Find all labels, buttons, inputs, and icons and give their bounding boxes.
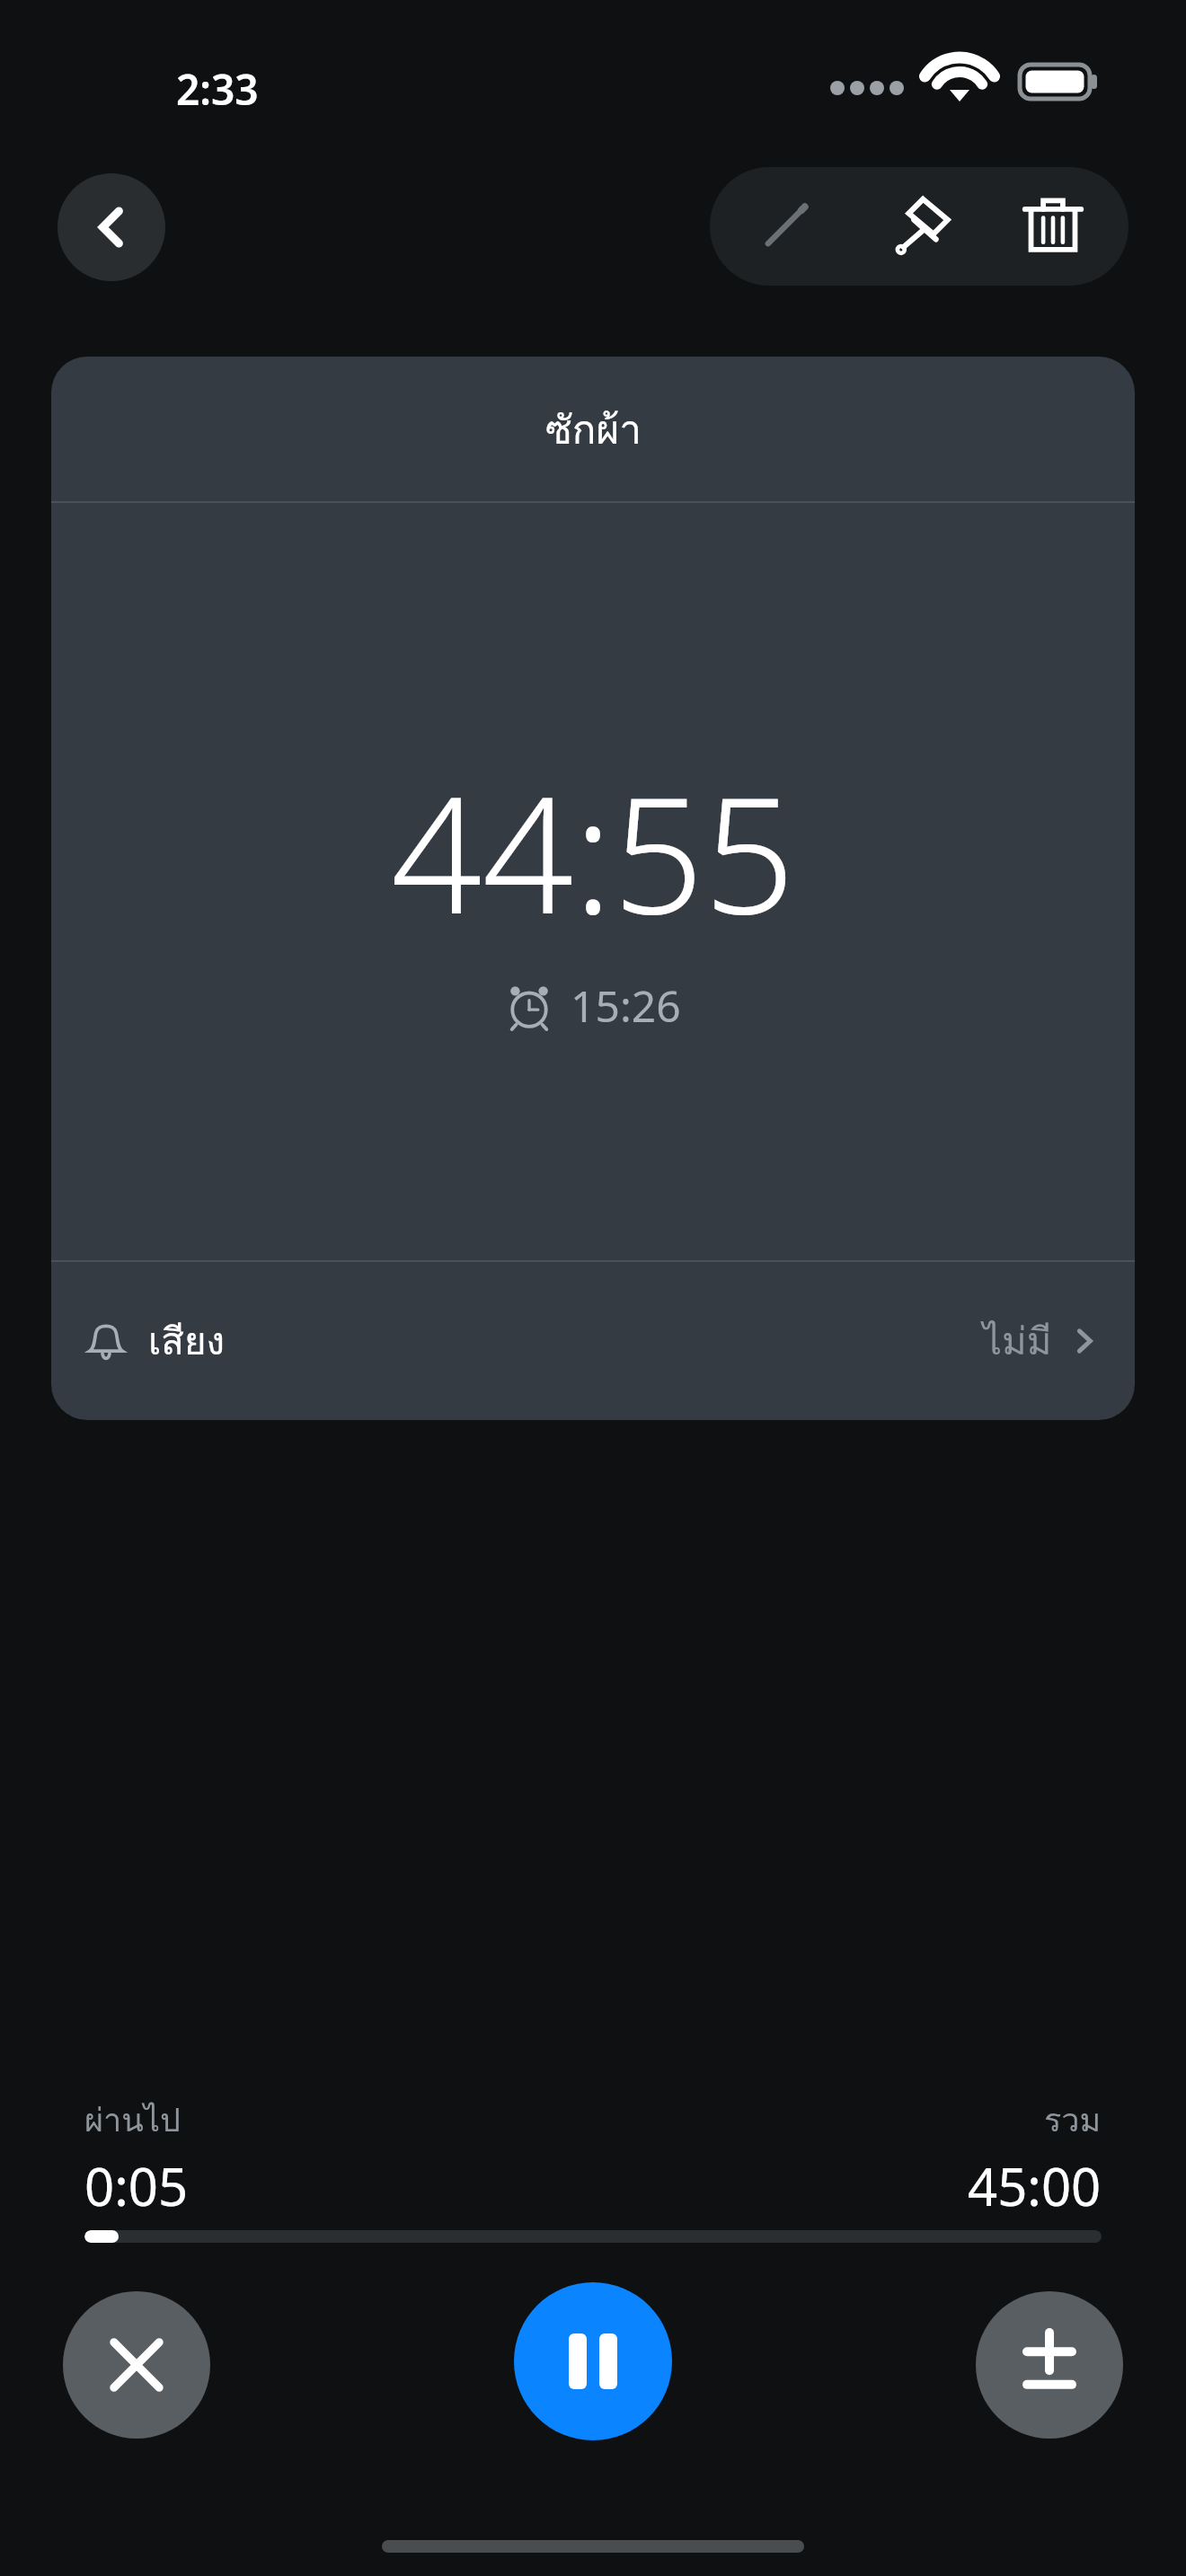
staticText: 2:33: [176, 61, 259, 118]
staticText: เสียง: [148, 1311, 226, 1372]
button[interactable]: เสียง: [51, 1262, 1135, 1420]
button[interactable]: Cancel: [63, 2291, 210, 2439]
staticText: 45:00: [968, 2150, 1102, 2221]
staticText: 44:55: [391, 743, 795, 960]
staticText: 15:26: [571, 976, 681, 1035]
staticText: ผ่านไป: [84, 2095, 181, 2146]
button[interactable]: Back: [58, 173, 165, 281]
staticText: ซักผ้า: [545, 398, 642, 461]
button[interactable]: Pause: [514, 2282, 672, 2440]
button[interactable]: Theme: [861, 167, 978, 286]
staticText: 0:05: [84, 2150, 189, 2221]
staticText: ไม่มี: [983, 1311, 1052, 1372]
button[interactable]: Edit: [727, 167, 844, 286]
staticText: รวม: [1044, 2095, 1102, 2146]
button[interactable]: Delete: [995, 167, 1111, 286]
button[interactable]: Add time: [976, 2291, 1123, 2439]
